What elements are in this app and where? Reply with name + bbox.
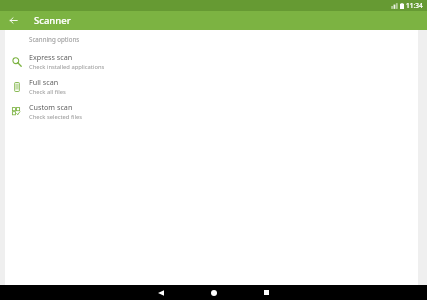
button[interactable]: Recent apps: [257, 285, 276, 300]
button[interactable]: Custom scan: [5, 99, 418, 124]
staticText: Custom scan: [29, 102, 73, 112]
staticText: Express scan: [29, 52, 73, 62]
staticText: Check all files: [29, 88, 66, 96]
button[interactable]: Back: [151, 285, 170, 300]
staticText: Check selected files: [29, 113, 82, 121]
staticText: Full scan: [29, 77, 59, 87]
staticText: Scanner: [34, 14, 71, 27]
button[interactable]: Full scan: [5, 74, 418, 99]
staticText: 11:34: [406, 1, 423, 10]
button[interactable]: Express scan: [5, 49, 418, 74]
button[interactable]: Navigate up: [6, 13, 21, 28]
staticText: Scanning options: [29, 35, 80, 43]
button[interactable]: Home: [204, 285, 223, 300]
staticText: Check installed applications: [29, 63, 105, 71]
